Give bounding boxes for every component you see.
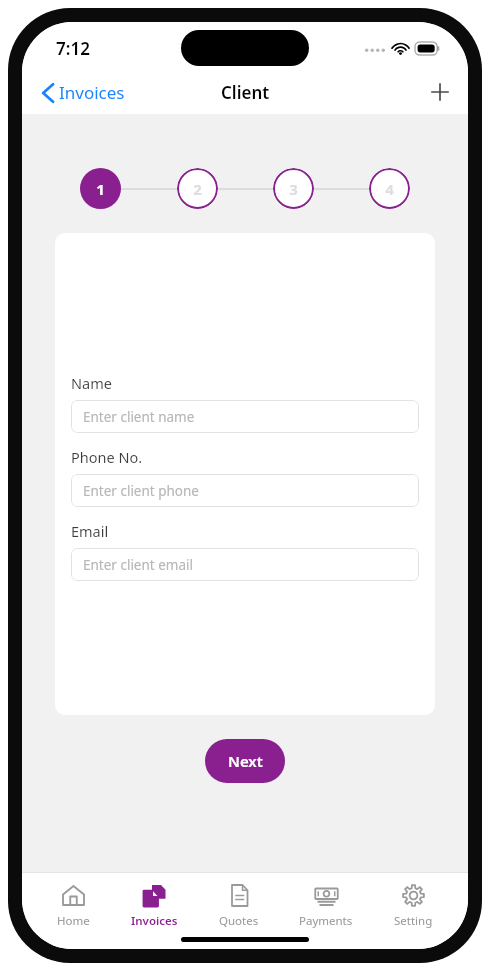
staticText: 7:12 xyxy=(56,37,90,60)
button[interactable]: Quotes xyxy=(213,881,265,931)
button[interactable]: Enter client name xyxy=(71,400,419,433)
staticText: Client xyxy=(221,81,270,104)
staticText: Email xyxy=(71,521,109,541)
staticText: 1 xyxy=(96,179,105,199)
button[interactable]: Payments xyxy=(293,881,359,931)
button[interactable]: Enter client email xyxy=(71,548,419,581)
staticText: Invoices xyxy=(131,913,178,929)
staticText: Payments xyxy=(299,913,353,929)
button[interactable]: Home xyxy=(51,881,96,931)
button[interactable]: Setting xyxy=(388,881,439,931)
staticText: Name xyxy=(71,373,112,393)
button[interactable]: Invoices xyxy=(22,77,133,108)
staticText: Phone No. xyxy=(71,447,143,467)
staticText: Enter client phone xyxy=(83,482,199,500)
staticText: 3 xyxy=(289,179,298,199)
button[interactable]: Invoices xyxy=(125,881,184,931)
button[interactable]: 1 xyxy=(80,168,121,209)
button[interactable]: Add xyxy=(412,74,468,110)
button[interactable]: Next xyxy=(205,739,285,783)
staticText: 2 xyxy=(193,179,202,199)
staticText: Invoices xyxy=(59,81,125,104)
button[interactable]: Enter client phone xyxy=(71,474,419,507)
staticText: Setting xyxy=(394,913,433,929)
button[interactable]: 4 xyxy=(369,168,410,209)
button[interactable]: 3 xyxy=(273,168,314,209)
staticText: Enter client name xyxy=(83,408,195,426)
staticText: Next xyxy=(228,751,263,771)
staticText: 4 xyxy=(385,179,394,199)
staticText: Home xyxy=(57,913,90,929)
staticText: Enter client email xyxy=(83,556,193,574)
button[interactable]: 2 xyxy=(177,168,218,209)
staticText: Quotes xyxy=(219,913,259,929)
